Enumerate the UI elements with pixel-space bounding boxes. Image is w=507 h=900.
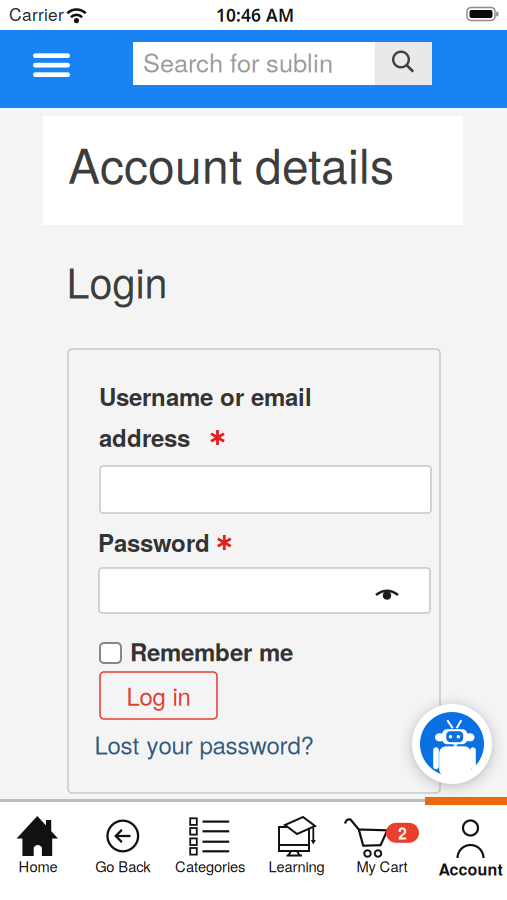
staticText: Search for sublin [143, 43, 333, 80]
button[interactable]: Account [422, 802, 507, 897]
staticText: Home [18, 855, 57, 876]
staticText: Account details [68, 129, 394, 197]
button[interactable]: Home [0, 802, 84, 897]
button[interactable]: Lost your password? [94, 727, 313, 761]
staticText: Password [98, 525, 210, 559]
staticText: Lost your password? [94, 727, 313, 761]
staticText: Remember me [130, 634, 293, 669]
button[interactable]: Search [133, 42, 432, 85]
staticText: Log in [126, 678, 190, 713]
button[interactable]: Show password [374, 585, 400, 601]
staticText: address [99, 420, 190, 454]
staticText: Go Back [95, 855, 150, 876]
staticText: Username or email [99, 379, 312, 413]
staticText: 10:46 AM [216, 3, 294, 26]
staticText: 2 [398, 821, 407, 844]
staticText: Categories [175, 855, 245, 876]
button[interactable]: Categories [169, 802, 253, 897]
button[interactable]: Menu [33, 53, 70, 77]
button[interactable]: 2 [338, 802, 422, 897]
staticText: Learning [268, 855, 324, 876]
button[interactable]: Learning [253, 802, 338, 897]
staticText: Login [66, 251, 167, 310]
button[interactable]: Remember me [100, 630, 300, 672]
staticText: My Cart [356, 855, 407, 876]
button[interactable]: Chat [412, 704, 492, 784]
button[interactable]: Log in [100, 672, 217, 719]
staticText: Carrier [9, 1, 64, 26]
button[interactable]: Go Back [84, 802, 169, 897]
staticText: Account [438, 857, 502, 880]
